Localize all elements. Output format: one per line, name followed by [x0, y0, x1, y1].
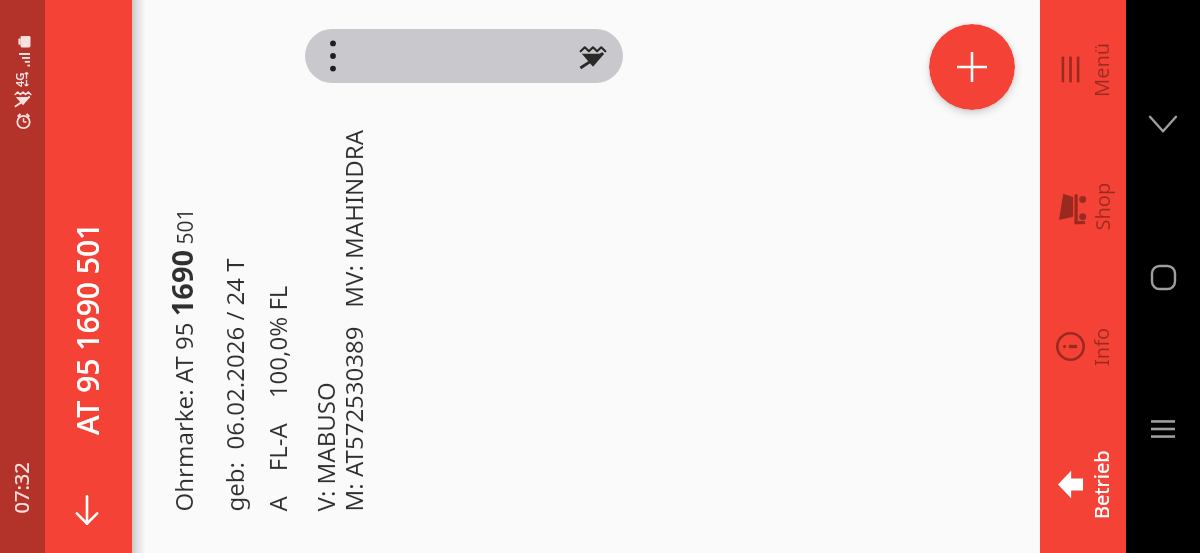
- button[interactable]: More options: [313, 29, 353, 83]
- button[interactable]: Recents: [1135, 401, 1191, 457]
- button[interactable]: Menü: [1040, 0, 1126, 138]
- button[interactable]: Shop: [1040, 138, 1126, 276]
- staticText: 07:32: [7, 461, 34, 513]
- button[interactable]: Back: [1135, 96, 1191, 152]
- staticText: 4G: [12, 72, 27, 87]
- button[interactable]: Offline: [571, 34, 615, 78]
- staticText: Menü: [1088, 42, 1115, 97]
- button[interactable]: Add: [929, 24, 1015, 110]
- button[interactable]: More options: [305, 29, 623, 83]
- staticText: Info: [1088, 327, 1115, 366]
- button[interactable]: Back: [63, 486, 111, 534]
- button[interactable]: Betrieb: [1040, 415, 1126, 553]
- staticText: Betrieb: [1088, 450, 1115, 519]
- staticText: Shop: [1088, 182, 1115, 230]
- staticText: geb: 06.02.2026 / 24 T: [217, 257, 250, 511]
- staticText: Ohrmarke: AT 95 1690 501: [161, 207, 200, 511]
- button[interactable]: Info: [1040, 277, 1126, 415]
- staticText: A FL-A 100,0% FL: [260, 285, 293, 511]
- staticText: V: MABUSO: [308, 381, 341, 511]
- staticText: AT 95 1690 501: [67, 222, 108, 435]
- button[interactable]: Home: [1135, 249, 1191, 305]
- staticText: M: AT572530389 MV: MAHINDRA: [336, 129, 369, 511]
